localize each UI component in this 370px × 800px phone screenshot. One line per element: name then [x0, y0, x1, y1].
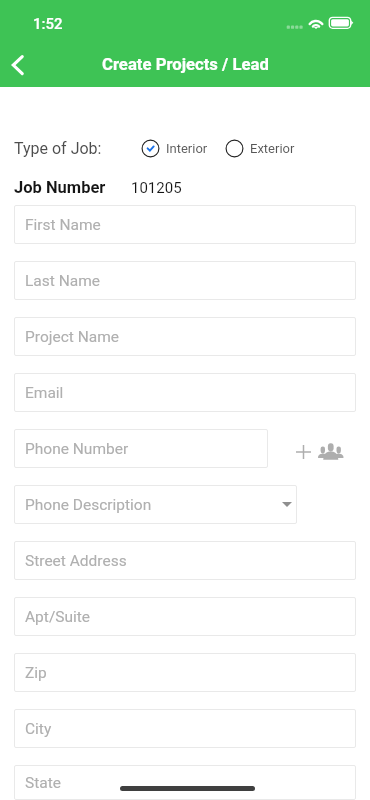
button[interactable]: Last Name: [14, 261, 356, 300]
staticText: 101205: [131, 179, 182, 197]
button[interactable]: Zip: [14, 653, 356, 692]
staticText: 1:52: [33, 15, 63, 33]
staticText: Project Name: [25, 328, 119, 346]
staticText: Exterior: [250, 141, 295, 156]
staticText: Apt/Suite: [25, 608, 91, 626]
button[interactable]: Street Address: [14, 541, 356, 580]
staticText: First Name: [25, 216, 101, 234]
staticText: City: [25, 720, 52, 738]
button[interactable]: City: [14, 709, 356, 748]
button[interactable]: Project Name: [14, 317, 356, 356]
staticText: Phone Number: [25, 440, 129, 458]
button[interactable]: Exterior: [225, 139, 295, 158]
staticText: Create Projects / Lead: [102, 55, 269, 75]
button[interactable]: Email: [14, 373, 356, 412]
staticText: Zip: [25, 664, 47, 682]
button[interactable]: First Name: [14, 205, 356, 244]
button[interactable]: Apt/Suite: [14, 597, 356, 636]
staticText: Type of Job:: [14, 139, 102, 158]
button[interactable]: Phone Description: [14, 485, 297, 524]
staticText: Job Number: [14, 178, 106, 197]
staticText: Street Address: [25, 552, 127, 570]
button[interactable]: Choose from contacts: [316, 432, 346, 471]
staticText: State: [25, 774, 61, 792]
staticText: Interior: [166, 141, 208, 156]
button[interactable]: State: [14, 765, 356, 800]
staticText: Phone Description: [25, 496, 152, 514]
staticText: Email: [25, 384, 64, 402]
staticText: Last Name: [25, 272, 100, 290]
button[interactable]: Add phone number: [289, 432, 318, 471]
button[interactable]: Phone Number: [14, 429, 268, 468]
button[interactable]: Interior: [141, 139, 208, 158]
button[interactable]: Back: [0, 44, 36, 86]
